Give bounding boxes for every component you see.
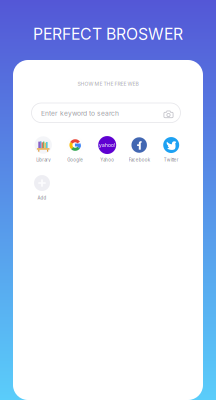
staticText: Facebook xyxy=(129,157,150,162)
button[interactable]: Library xyxy=(27,135,59,163)
button[interactable]: Google xyxy=(59,135,91,163)
staticText: Library xyxy=(36,157,50,162)
staticText: Enter keyword to search xyxy=(41,109,119,117)
staticText: Twitter xyxy=(164,157,179,162)
button[interactable]: Facebook xyxy=(123,135,155,163)
staticText: Google xyxy=(67,157,83,162)
staticText: SHOW ME THE FREE WEB xyxy=(77,81,138,87)
button[interactable]: Add xyxy=(26,173,58,201)
staticText: yahoo! xyxy=(99,142,116,148)
button[interactable]: Twitter xyxy=(155,135,187,163)
staticText: PERFECT BROSWER xyxy=(33,24,183,44)
button[interactable]: yahoo! xyxy=(91,135,123,163)
staticText: Yahoo xyxy=(100,157,114,162)
staticText: Add xyxy=(37,195,46,200)
button[interactable]: Enter keyword to search xyxy=(31,103,180,123)
